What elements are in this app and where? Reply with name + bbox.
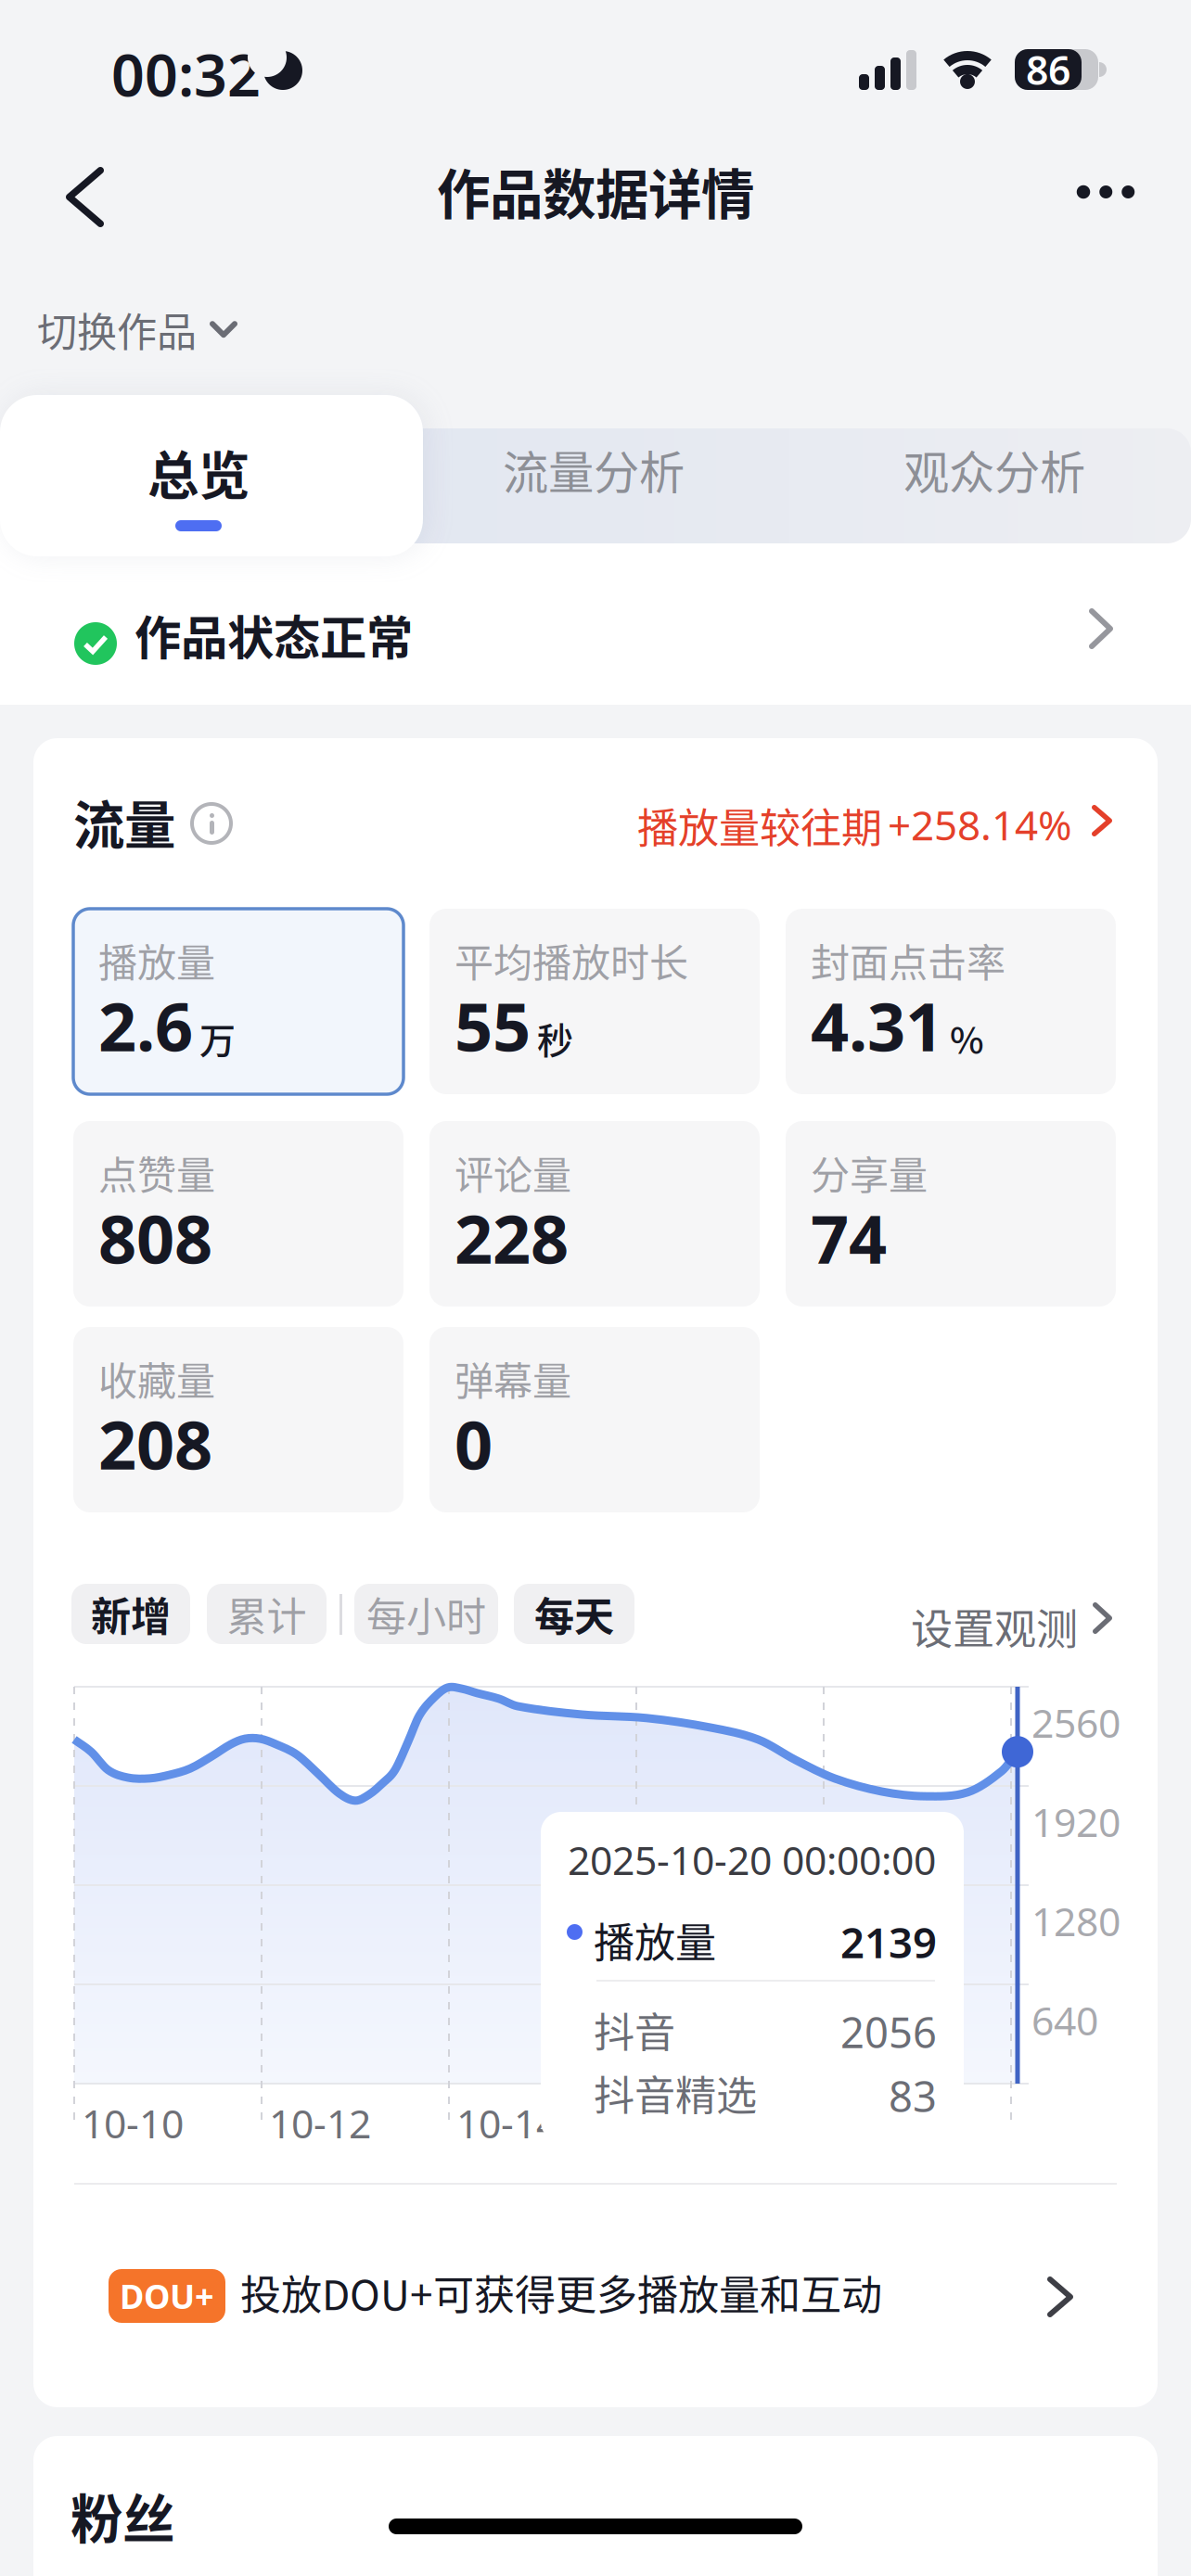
staticText: 流量分析: [503, 436, 685, 502]
staticText: 2056: [840, 2004, 937, 2060]
staticText: 55: [455, 981, 531, 1070]
button[interactable]: 累计: [207, 1584, 327, 1644]
staticText: 万: [199, 1012, 236, 1064]
staticText: 评论量: [455, 1144, 571, 1201]
button[interactable]: 每天: [514, 1584, 634, 1644]
staticText: 00:32: [111, 35, 261, 112]
button[interactable]: More options: [1056, 152, 1156, 232]
staticText: 封面点击率: [811, 932, 1005, 988]
staticText: 74: [811, 1193, 887, 1282]
staticText: 总览: [147, 435, 250, 509]
button[interactable]: 新增: [71, 1584, 190, 1644]
staticText: 累计: [227, 1585, 307, 1643]
staticText: 208: [98, 1399, 212, 1488]
button[interactable]: 点赞量: [73, 1121, 403, 1307]
button[interactable]: 收藏量: [73, 1327, 403, 1512]
staticText: 播放量: [98, 932, 215, 988]
staticText: %: [950, 1012, 984, 1064]
staticText: 0: [455, 1399, 493, 1488]
staticText: 10-12: [269, 2097, 371, 2149]
button[interactable]: 作品状态正常: [0, 567, 1191, 721]
staticText: 4.31: [811, 981, 943, 1070]
button[interactable]: 播放量: [73, 909, 403, 1094]
button[interactable]: 平均播放时长: [429, 909, 760, 1094]
button[interactable]: DOU+: [33, 2185, 1158, 2407]
staticText: 粉丝: [70, 2478, 174, 2554]
staticText: 10-10: [82, 2097, 184, 2149]
staticText: 228: [455, 1193, 569, 1282]
staticText: 640: [1031, 1994, 1098, 2046]
staticText: 观众分析: [903, 436, 1085, 502]
staticText: 作品状态正常: [134, 601, 413, 668]
staticText: 1280: [1031, 1894, 1121, 1947]
button[interactable]: 评论量: [429, 1121, 760, 1307]
staticText: 秒: [537, 1012, 573, 1064]
staticText: 流量: [73, 784, 175, 859]
button[interactable]: 每小时: [354, 1584, 498, 1644]
staticText: 2560: [1031, 1696, 1121, 1749]
staticText: 点赞量: [98, 1144, 215, 1201]
button[interactable]: 总览: [0, 395, 423, 556]
staticText: 抖音精选: [594, 2063, 757, 2122]
staticText: 2025-10-20 00:00:00: [568, 1833, 936, 1886]
staticText: DOU+: [120, 2274, 214, 2318]
button[interactable]: 分享量: [786, 1121, 1116, 1307]
staticText: 平均播放时长: [455, 932, 688, 988]
staticText: +258.14%: [888, 797, 1072, 852]
button[interactable]: 封面点击率: [786, 909, 1116, 1094]
staticText: 每小时: [366, 1585, 486, 1643]
button[interactable]: 观众分析: [803, 395, 1185, 543]
staticText: 808: [98, 1193, 212, 1282]
staticText: 1920: [1031, 1795, 1121, 1848]
staticText: 新增: [91, 1585, 171, 1643]
staticText: 抖音: [594, 2000, 675, 2059]
staticText: 切换作品: [37, 300, 197, 358]
button[interactable]: 弹幕量: [429, 1327, 760, 1512]
button[interactable]: 流量分析: [423, 395, 764, 543]
staticText: 86: [1026, 43, 1070, 96]
button[interactable]: 设置观测: [911, 1584, 1148, 1644]
button[interactable]: Back: [38, 152, 132, 242]
staticText: 分享量: [811, 1144, 928, 1201]
staticText: 播放量较往期: [637, 796, 882, 855]
staticText: 10-14: [456, 2097, 558, 2149]
staticText: 收藏量: [98, 1350, 215, 1407]
button[interactable]: 播放量较往期: [632, 790, 1121, 849]
staticText: 设置观测: [911, 1596, 1078, 1657]
staticText: 2.6: [98, 981, 193, 1070]
staticText: 83: [889, 2068, 937, 2124]
staticText: 弹幕量: [455, 1350, 571, 1407]
button[interactable]: 切换作品: [35, 287, 237, 371]
staticText: 作品数据详情: [437, 152, 754, 230]
staticText: 播放量: [594, 1910, 716, 1969]
staticText: 每天: [534, 1585, 614, 1643]
staticText: 2139: [840, 1914, 937, 1970]
staticText: 投放DOU+可获得更多播放量和互动: [240, 2263, 882, 2322]
